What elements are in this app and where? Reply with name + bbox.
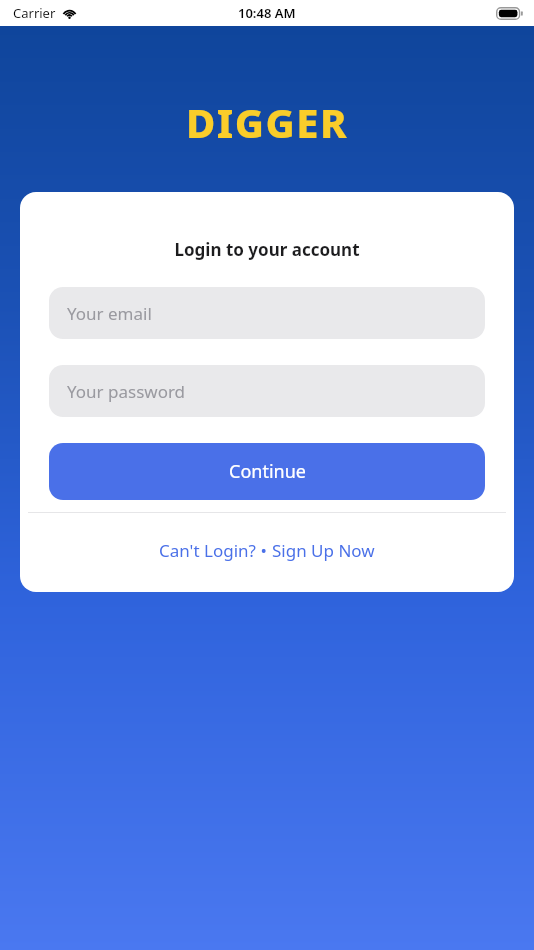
staticText: Can't Login? [159, 539, 256, 562]
button[interactable]: Can't Login? [159, 539, 256, 562]
other: Wi-Fi [62, 7, 77, 19]
button[interactable]: Sign Up Now [272, 539, 375, 562]
button[interactable]: Your password [49, 365, 485, 417]
staticText: Login to your account [20, 238, 514, 261]
staticText: • [256, 539, 272, 562]
staticText: Your email [67, 302, 152, 325]
staticText: Sign Up Now [272, 539, 375, 562]
staticText: Carrier [13, 4, 56, 22]
staticText: 10:48 AM [238, 4, 296, 22]
button[interactable]: Continue [49, 443, 485, 500]
button[interactable]: Your email [49, 287, 485, 339]
other: Battery full [496, 7, 523, 20]
staticText: DIGGER [0, 95, 534, 149]
staticText: Your password [67, 380, 186, 403]
staticText: Continue [229, 459, 306, 484]
